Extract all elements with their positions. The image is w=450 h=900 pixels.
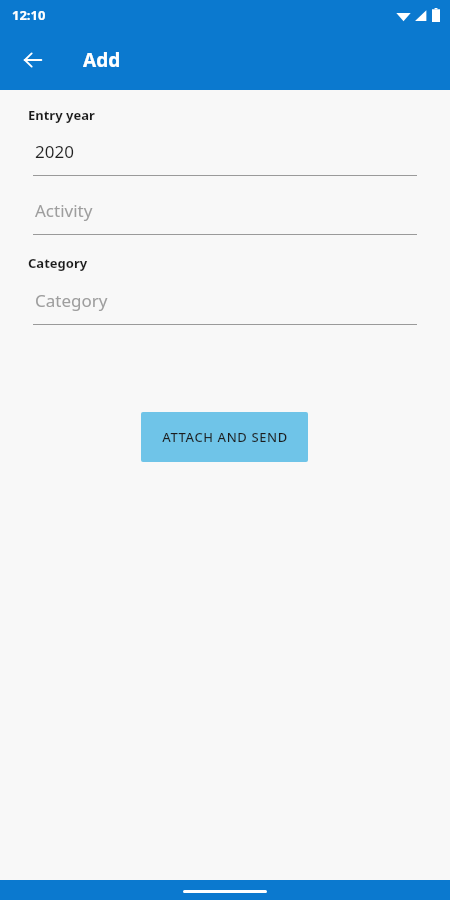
staticText: Entry year — [28, 106, 95, 124]
button[interactable]: Activity input — [33, 197, 417, 235]
button[interactable]: Back — [9, 36, 57, 84]
button[interactable]: Entry year input — [33, 138, 417, 176]
staticText: 2020 — [35, 140, 74, 163]
staticText: Category — [28, 254, 88, 272]
staticText: ATTACH AND SEND — [162, 428, 288, 446]
button[interactable]: Category input — [33, 287, 417, 325]
button[interactable]: Home — [183, 890, 267, 893]
button[interactable]: ATTACH AND SEND — [141, 412, 308, 462]
staticText: 12:10 — [12, 6, 46, 24]
staticText: Add — [83, 47, 121, 73]
staticText: Category — [35, 289, 108, 312]
staticText: Activity — [35, 199, 93, 222]
